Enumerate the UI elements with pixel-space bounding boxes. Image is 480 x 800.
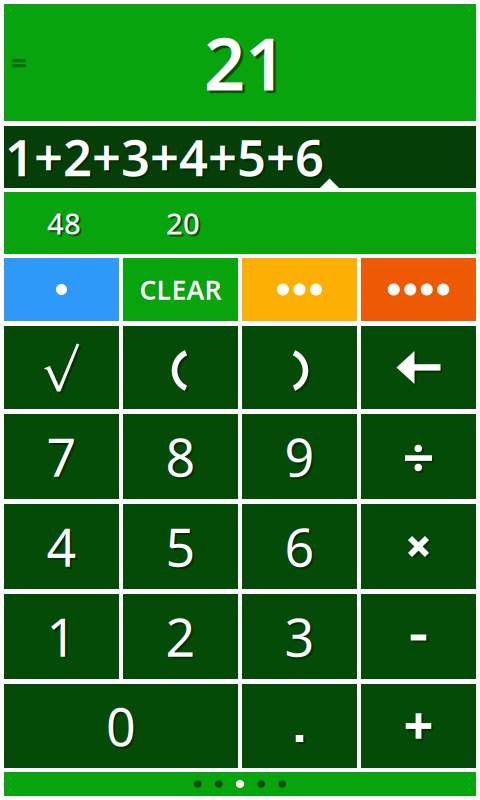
- staticText: 7: [46, 422, 76, 491]
- button[interactable]: Minus: [361, 594, 476, 679]
- staticText: 8: [165, 422, 195, 491]
- button[interactable]: 9: [242, 414, 357, 499]
- button[interactable]: Multiply: [361, 504, 476, 589]
- button[interactable]: CLEAR: [123, 258, 238, 321]
- button[interactable]: Square root: [4, 326, 119, 409]
- button[interactable]: One dot: [4, 258, 119, 321]
- button[interactable]: Three dots: [242, 258, 357, 321]
- button[interactable]: 1: [4, 594, 119, 679]
- button[interactable]: 0: [4, 684, 238, 768]
- staticText: =: [11, 44, 27, 81]
- staticText: 5: [165, 512, 195, 581]
- button[interactable]: Close parenthesis: [242, 326, 357, 409]
- staticText: 2: [165, 602, 195, 671]
- button[interactable]: History: [4, 47, 34, 77]
- button[interactable]: 3: [242, 594, 357, 679]
- button[interactable]: 5: [123, 504, 238, 589]
- staticText: 4: [46, 512, 76, 581]
- button[interactable]: Divide: [361, 414, 476, 499]
- staticText: 1+2+3+4+5+6: [5, 123, 324, 190]
- button[interactable]: Backspace: [361, 326, 476, 409]
- button[interactable]: 2: [123, 594, 238, 679]
- button[interactable]: 6: [242, 504, 357, 589]
- button[interactable]: 7: [4, 414, 119, 499]
- button[interactable]: Decimal point: [242, 684, 357, 768]
- staticText: 9: [284, 422, 314, 491]
- button[interactable]: 8: [123, 414, 238, 499]
- staticText: CLEAR: [139, 272, 221, 307]
- staticText: 48: [47, 203, 81, 242]
- staticText: 3: [284, 602, 314, 671]
- button[interactable]: Four dots: [361, 258, 476, 321]
- staticText: 20: [166, 203, 200, 242]
- staticText: 21: [204, 15, 286, 110]
- staticText: 0: [106, 691, 136, 761]
- staticText: 6: [284, 512, 314, 581]
- button[interactable]: Plus: [361, 684, 476, 768]
- button[interactable]: Open parenthesis: [123, 326, 238, 409]
- staticText: 1: [46, 602, 76, 671]
- button[interactable]: 4: [4, 504, 119, 589]
